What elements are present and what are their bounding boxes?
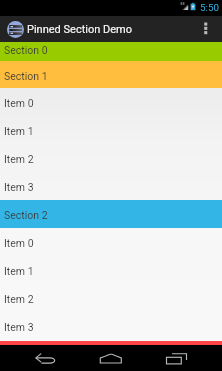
staticText: Item 3 xyxy=(4,321,34,333)
staticText: Item 2 xyxy=(4,293,34,305)
button[interactable]: More options xyxy=(193,16,222,42)
staticText: Section 0 xyxy=(4,44,48,56)
button[interactable]: Item 1 xyxy=(0,116,222,144)
button[interactable]: Back xyxy=(0,345,74,371)
button[interactable]: Item 0 xyxy=(0,228,222,256)
button[interactable]: Section 2 xyxy=(0,200,222,228)
button[interactable]: Home xyxy=(74,345,148,371)
staticText: Item 1 xyxy=(4,125,34,137)
button[interactable]: Item 2 xyxy=(0,284,222,312)
staticText: Item 2 xyxy=(4,153,34,165)
button[interactable]: Item 3 xyxy=(0,172,222,200)
staticText: Pinned Section Demo xyxy=(27,23,132,36)
staticText: Item 0 xyxy=(4,97,34,109)
button[interactable]: Item 2 xyxy=(0,144,222,172)
staticText: Section 2 xyxy=(4,209,48,221)
staticText: 5:50 xyxy=(200,2,219,13)
button[interactable]: Section 1 xyxy=(0,61,222,88)
staticText: Item 0 xyxy=(4,237,34,249)
button[interactable]: Recent apps xyxy=(148,345,222,371)
button[interactable]: Item 3 xyxy=(0,312,222,340)
button[interactable]: Section 0 xyxy=(0,42,222,61)
button[interactable]: Item 1 xyxy=(0,256,222,284)
button[interactable]: Item 0 xyxy=(0,88,222,116)
staticText: Section 1 xyxy=(4,70,48,82)
staticText: Item 1 xyxy=(4,265,34,277)
staticText: Item 3 xyxy=(4,181,34,193)
